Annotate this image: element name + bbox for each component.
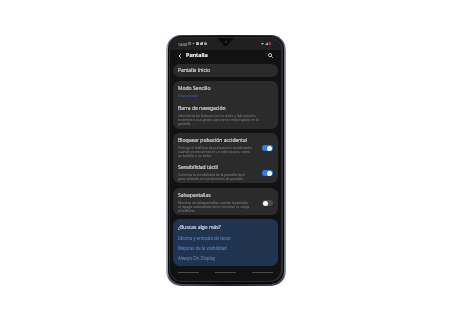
staticText: Barra de navegación [178, 105, 226, 112]
button[interactable]: Modo Sencillo [173, 81, 278, 101]
button[interactable]: Activado [262, 145, 273, 151]
button[interactable]: Desactivado [262, 200, 273, 206]
button[interactable]: Idioma y entrada de texto [178, 235, 273, 241]
staticText: Protege el teléfono de pulsaciones accid… [178, 145, 253, 158]
staticText: Pantalla [186, 51, 208, 59]
staticText: 14:34 [178, 42, 187, 47]
button[interactable]: Always On Display [178, 255, 273, 261]
button[interactable]: Activado [262, 170, 273, 176]
staticText: ¿Buscas algo más? [178, 224, 221, 231]
button[interactable]: Bloquear pulsación accidental [173, 133, 278, 160]
staticText: Pantalla Inicio [178, 67, 211, 74]
staticText: Muestra un salvapantallas cuando la pant… [178, 200, 250, 213]
button[interactable]: Mejoras de la visibilidad [178, 245, 273, 251]
staticText: Bloquear pulsación accidental [178, 137, 248, 144]
button[interactable]: Barra de navegación [173, 101, 278, 129]
staticText: Administra los botones: inicio, atrás y … [178, 113, 259, 126]
staticText: Aumenta la sensibilidad de la pantalla t… [178, 172, 245, 181]
staticText: Modo Sencillo [178, 85, 211, 92]
button[interactable]: Pantalla Inicio [173, 64, 278, 77]
button[interactable]: Atrás [176, 52, 183, 59]
staticText: Sensibilidad táctil [178, 164, 218, 171]
button[interactable]: Sensibilidad táctil [173, 160, 278, 183]
button[interactable]: Buscar [266, 51, 274, 59]
staticText: Salvapantallas [178, 192, 211, 199]
button[interactable]: Salvapantallas [173, 188, 278, 215]
staticText: Desactivado [178, 93, 198, 98]
